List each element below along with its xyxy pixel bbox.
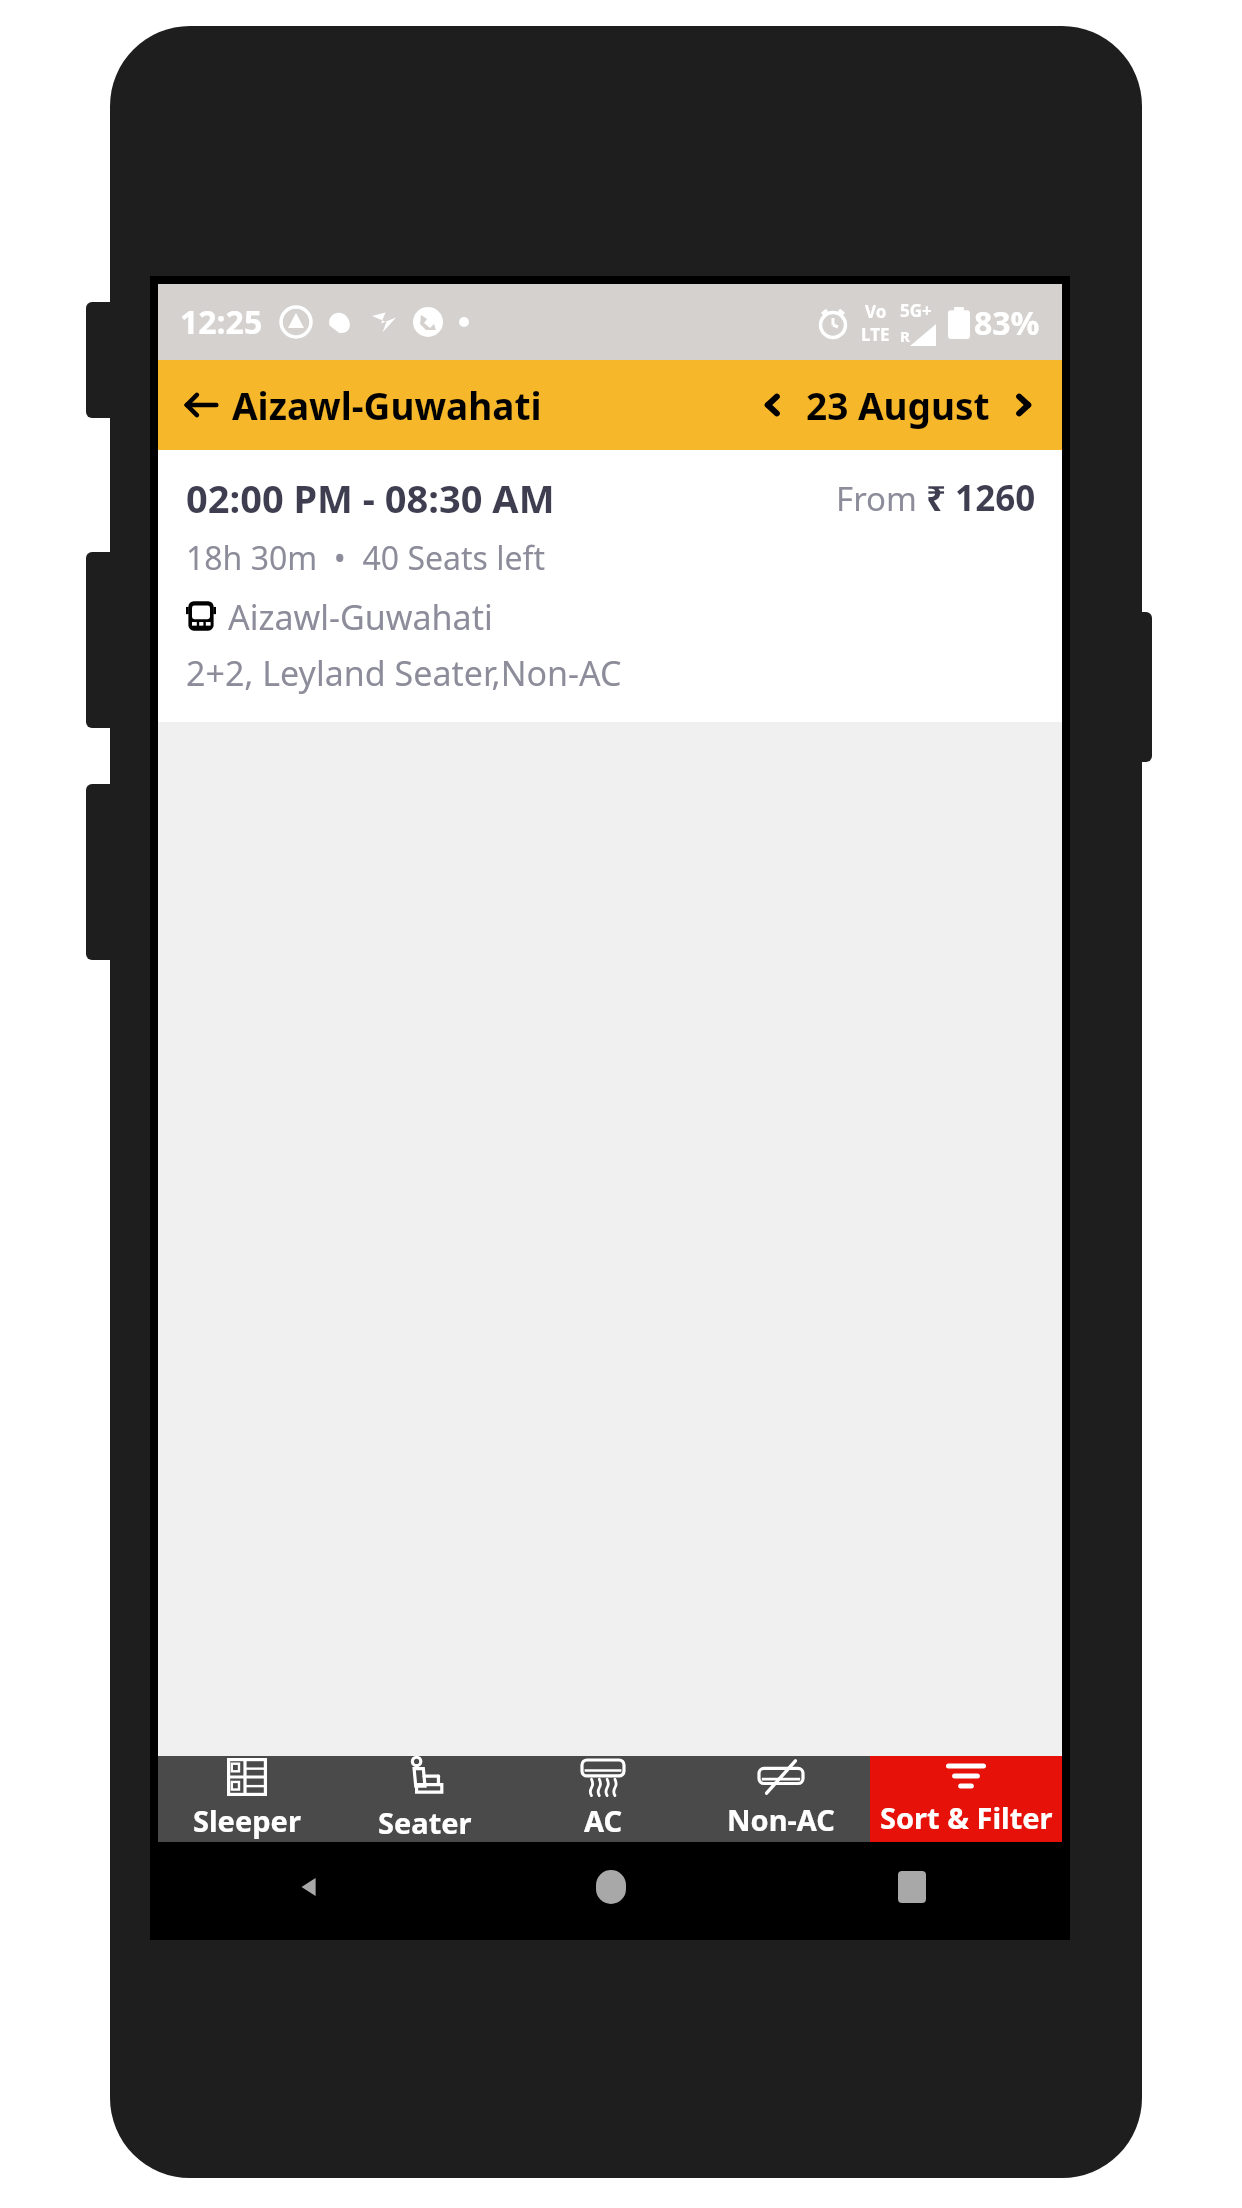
staticText: 5G+ xyxy=(900,299,932,322)
staticText: R xyxy=(900,326,910,346)
button[interactable]: 02:00 PM - 08:30 AM xyxy=(158,450,1062,722)
staticText: 23 August xyxy=(806,380,990,430)
button[interactable]: Sleeper xyxy=(158,1756,336,1842)
staticText: Non-AC xyxy=(727,1800,835,1839)
staticText: 12:25 xyxy=(180,300,263,344)
staticText: Seater xyxy=(378,1803,472,1842)
button[interactable]: Home xyxy=(460,1842,761,1932)
button[interactable]: Recents xyxy=(761,1842,1062,1932)
other: Back xyxy=(294,1872,324,1902)
other: Previous day xyxy=(760,391,788,419)
button[interactable]: AC xyxy=(514,1756,692,1842)
staticText: 18h 30m • 40 Seats left xyxy=(186,536,546,580)
staticText: 02:00 PM - 08:30 AM xyxy=(186,472,555,524)
staticText: Sleeper xyxy=(193,1801,301,1840)
staticText: Vo xyxy=(865,300,887,323)
button[interactable]: Non-AC xyxy=(692,1756,870,1842)
staticText: 83% xyxy=(974,301,1040,345)
button[interactable]: Sort & Filter xyxy=(870,1756,1062,1842)
staticText: Sort & Filter xyxy=(880,1798,1053,1837)
other: Home xyxy=(596,1870,626,1904)
button[interactable]: 23 August xyxy=(798,366,998,444)
button[interactable]: Back xyxy=(158,1842,460,1932)
button[interactable]: Previous day xyxy=(750,381,798,429)
staticText: AC xyxy=(584,1801,623,1840)
staticText: From xyxy=(836,476,926,521)
button[interactable]: Next day xyxy=(998,381,1062,429)
button[interactable]: Back xyxy=(158,366,554,444)
staticText: 2+2, Leyland Seater,Non-AC xyxy=(186,650,622,696)
other: Next day xyxy=(1008,391,1036,419)
staticText: ₹ 1260 xyxy=(926,474,1036,522)
staticText: LTE xyxy=(861,323,890,346)
other: Back xyxy=(184,388,218,422)
button[interactable]: Seater xyxy=(336,1756,514,1842)
other: Recents xyxy=(898,1871,926,1903)
staticText: Aizawl-Guwahati xyxy=(228,594,493,640)
staticText: Aizawl-Guwahati xyxy=(232,380,542,430)
